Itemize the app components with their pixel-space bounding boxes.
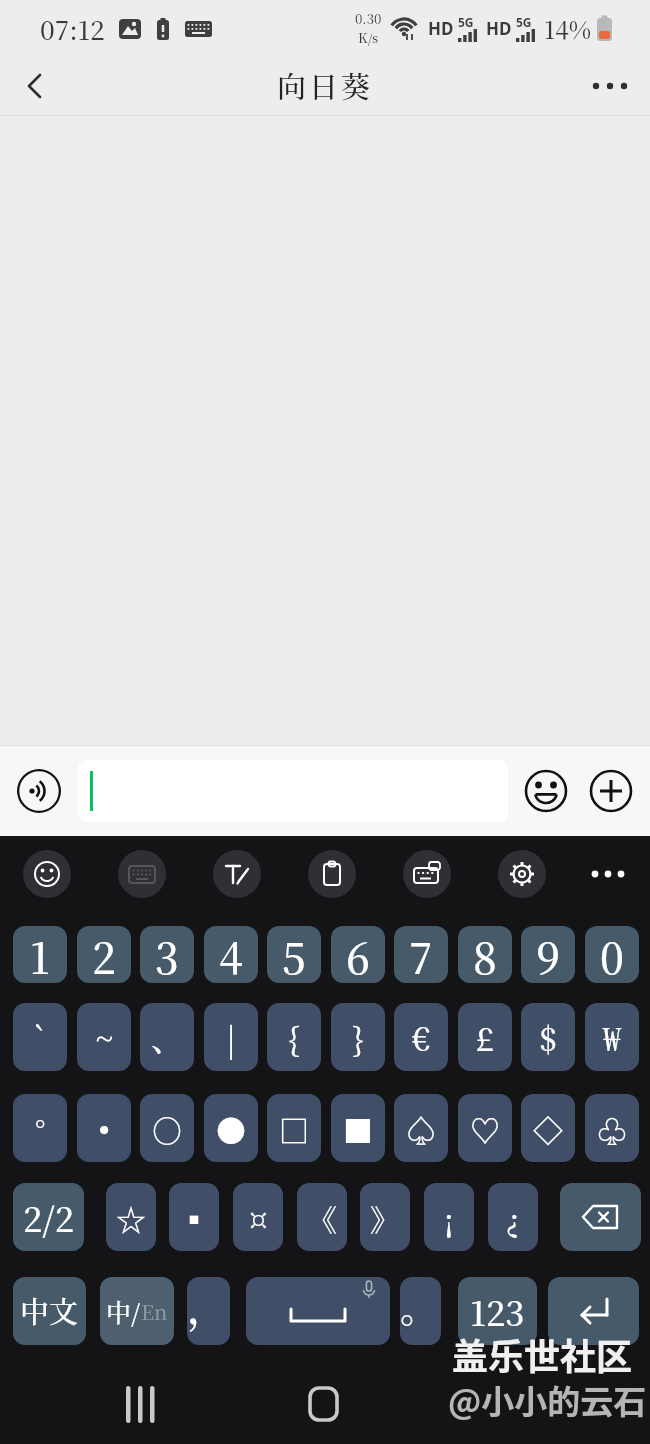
staticText: 1 (30, 926, 50, 983)
staticText: 《 (307, 1196, 337, 1239)
staticText: 。 (400, 1278, 439, 1333)
staticText: 8 (473, 926, 497, 983)
button[interactable] (308, 850, 356, 898)
button[interactable]: 。 (400, 1277, 441, 1345)
button[interactable]: 》 (360, 1183, 410, 1251)
button[interactable]: 2/2 (13, 1183, 84, 1251)
button[interactable]: 3 (140, 926, 194, 983)
staticText: 中/ (106, 1293, 141, 1329)
staticText: £ (476, 1014, 494, 1060)
button[interactable]: 中文 (13, 1277, 86, 1345)
staticText: ~ (95, 1014, 114, 1060)
staticText: □ (279, 1107, 309, 1150)
button[interactable]: 《 (297, 1183, 347, 1251)
button[interactable]: 4 (204, 926, 258, 983)
button[interactable]: } (331, 1003, 385, 1071)
staticText: ， (187, 1277, 227, 1334)
staticText: } (352, 1014, 365, 1060)
staticText: 盖乐世社区 (452, 1328, 633, 1380)
button[interactable] (17, 769, 61, 813)
staticText: 中文 (20, 1290, 79, 1332)
button[interactable] (213, 850, 261, 898)
button[interactable] (118, 850, 166, 898)
button[interactable]: € (394, 1003, 448, 1071)
staticText: 》 (370, 1196, 400, 1239)
staticText: HD (428, 17, 454, 40)
button[interactable]: 123 (458, 1277, 537, 1345)
button[interactable]: ~ (77, 1003, 131, 1071)
button[interactable]: 中/ (100, 1277, 174, 1345)
staticText: 2/2 (23, 1193, 75, 1242)
staticText: 2 (92, 926, 116, 983)
button[interactable] (14, 64, 58, 108)
button[interactable]: ₩ (585, 1003, 639, 1071)
button[interactable]: $ (521, 1003, 575, 1071)
button[interactable] (588, 64, 632, 108)
button[interactable]: ☆ (106, 1183, 156, 1251)
staticText: ♡ (470, 1107, 500, 1150)
button[interactable]: | (204, 1003, 258, 1071)
staticText: ¡ (444, 1196, 454, 1239)
staticText: K/s (358, 28, 379, 47)
button[interactable] (524, 769, 568, 813)
staticText: ◇ (533, 1107, 563, 1150)
staticText: En (141, 1297, 168, 1326)
button[interactable] (23, 850, 71, 898)
button[interactable]: 1 (13, 926, 67, 983)
staticText: ♤ (406, 1107, 436, 1150)
staticText: ¤ (250, 1196, 267, 1239)
staticText: 向日葵 (277, 65, 374, 107)
staticText: ¿ (506, 1196, 520, 1239)
button[interactable]: 、 (140, 1003, 194, 1071)
button[interactable]: ¿ (488, 1183, 538, 1251)
button[interactable]: ■ (331, 1094, 385, 1162)
staticText: ` (33, 1014, 48, 1060)
button[interactable] (585, 850, 633, 898)
staticText: 3 (155, 926, 179, 983)
staticText: € (412, 1014, 430, 1060)
staticText: 9 (536, 926, 561, 983)
button[interactable]: £ (458, 1003, 512, 1071)
button[interactable]: ◇ (521, 1094, 575, 1162)
button[interactable]: 2 (77, 926, 131, 983)
button[interactable]: □ (267, 1094, 321, 1162)
button[interactable]: 9 (521, 926, 575, 983)
button[interactable]: 0 (585, 926, 639, 983)
button[interactable]: ¤ (233, 1183, 283, 1251)
staticText: 4 (219, 926, 243, 983)
staticText: • (98, 1102, 111, 1154)
button[interactable]: ● (204, 1094, 258, 1162)
button[interactable] (589, 769, 633, 813)
staticText: { (288, 1014, 301, 1060)
button[interactable]: ° (13, 1094, 67, 1162)
button[interactable]: ， (187, 1277, 230, 1345)
staticText: 0.30 (355, 9, 382, 28)
button[interactable] (560, 1183, 641, 1251)
button[interactable]: { (267, 1003, 321, 1071)
button[interactable] (403, 850, 451, 898)
button[interactable]: 6 (331, 926, 385, 983)
staticText: 5 (282, 926, 306, 983)
staticText: $ (539, 1014, 557, 1060)
button[interactable]: • (77, 1094, 131, 1162)
staticText: ♧ (597, 1107, 627, 1150)
button[interactable]: ♤ (394, 1094, 448, 1162)
button[interactable]: ` (13, 1003, 67, 1071)
button[interactable]: ○ (140, 1094, 194, 1162)
button[interactable]: 7 (394, 926, 448, 983)
button[interactable] (548, 1277, 639, 1345)
button[interactable]: ¡ (424, 1183, 474, 1251)
staticText: 0 (600, 926, 624, 983)
staticText: ▪ (179, 1196, 209, 1239)
staticText: ☆ (116, 1196, 146, 1239)
staticText: 14% (544, 11, 592, 45)
button[interactable]: 5 (267, 926, 321, 983)
button[interactable]: 8 (458, 926, 512, 983)
button[interactable]: ♡ (458, 1094, 512, 1162)
button[interactable] (246, 1277, 390, 1345)
staticText: ○ (152, 1107, 182, 1150)
button[interactable] (78, 760, 508, 822)
button[interactable]: ▪ (169, 1183, 219, 1251)
button[interactable] (498, 850, 546, 898)
button[interactable]: ♧ (585, 1094, 639, 1162)
